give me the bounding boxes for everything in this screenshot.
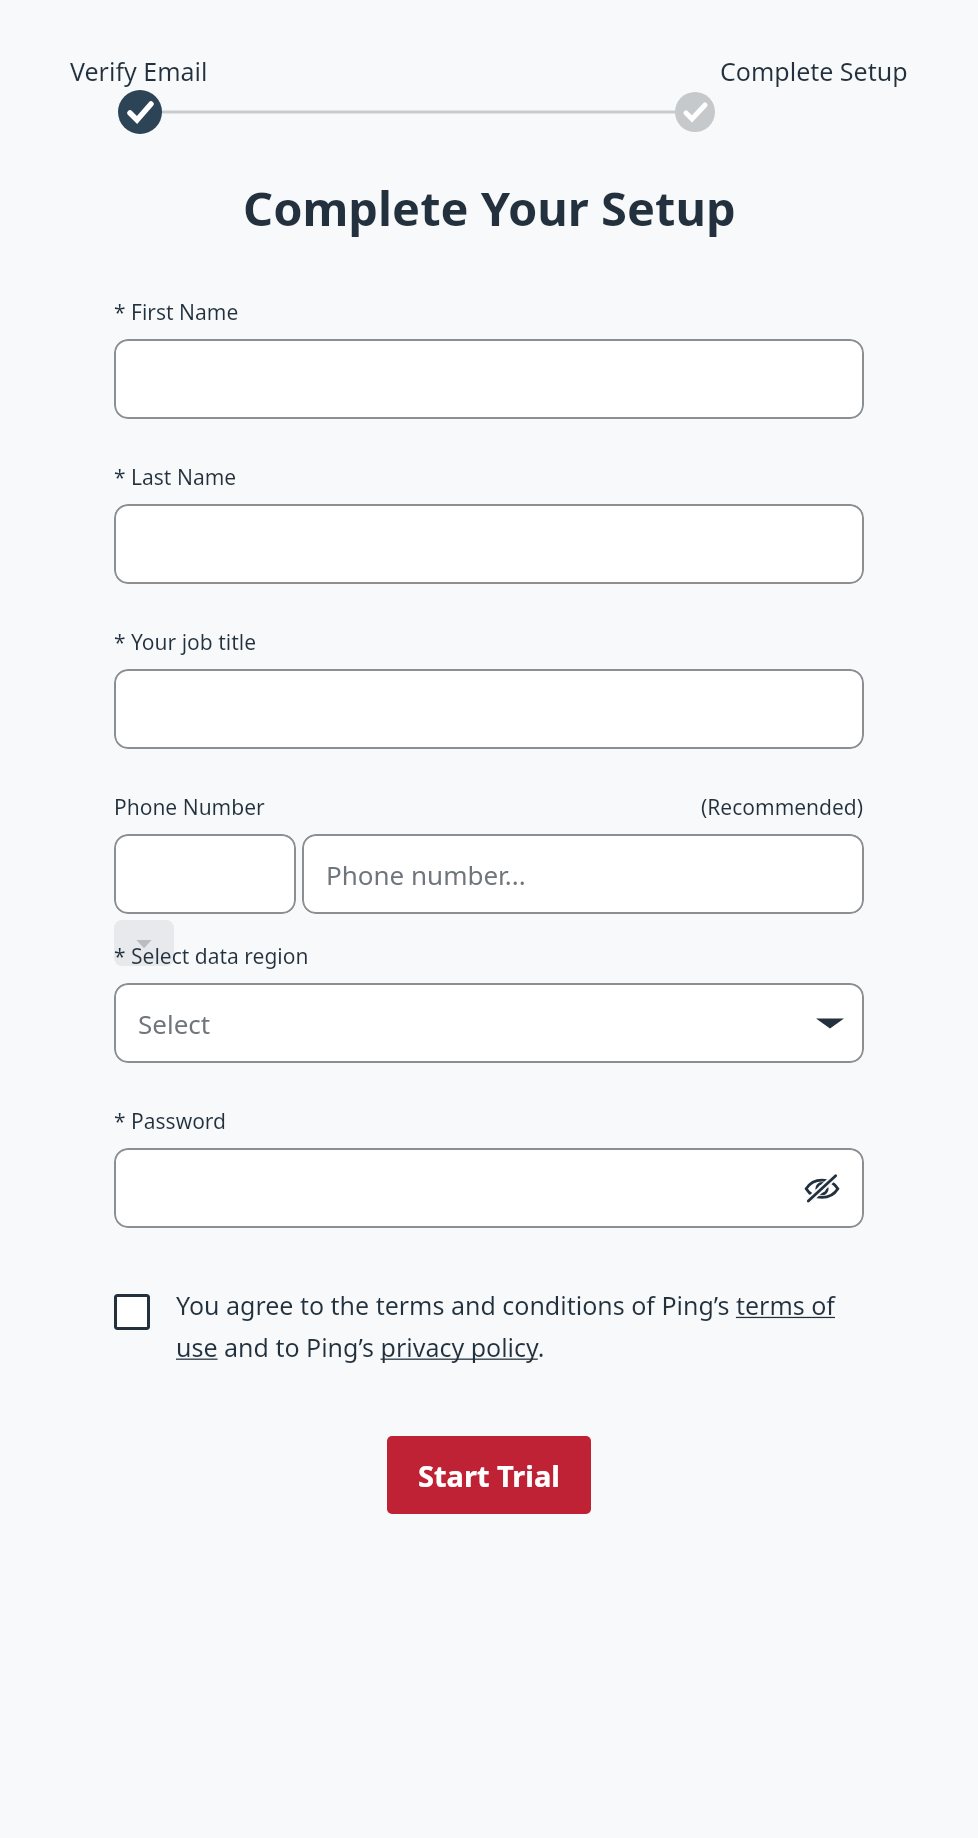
button[interactable] <box>114 339 864 419</box>
button[interactable]: Start Trial <box>387 1436 591 1514</box>
staticText: Complete Setup <box>720 54 908 88</box>
staticText: Verify Email <box>70 54 208 88</box>
button[interactable] <box>114 504 864 584</box>
button[interactable]: Country code <box>114 920 174 966</box>
button[interactable]: Select <box>114 983 864 1063</box>
button[interactable]: Phone number... <box>302 834 864 914</box>
button[interactable]: You agree to the terms and conditions of… <box>114 1288 864 1364</box>
staticText: * First Name <box>114 298 239 327</box>
button[interactable]: Show password <box>800 1166 844 1210</box>
button[interactable] <box>114 669 864 749</box>
staticText: * Your job title <box>114 628 257 657</box>
staticText: Phone number... <box>326 857 526 892</box>
staticText: * Last Name <box>114 463 237 492</box>
staticText: Complete Your Setup <box>243 176 736 240</box>
staticText: You agree to the terms and conditions of… <box>176 1288 864 1364</box>
button[interactable]: Show password <box>114 1148 864 1228</box>
staticText: Phone Number <box>114 793 265 822</box>
staticText: Select <box>138 1006 211 1041</box>
staticText: Start Trial <box>418 1456 560 1495</box>
staticText: * Password <box>114 1107 227 1136</box>
staticText: * Select data region <box>114 942 309 971</box>
staticText: (Recommended) <box>701 793 864 822</box>
button[interactable] <box>114 834 296 914</box>
